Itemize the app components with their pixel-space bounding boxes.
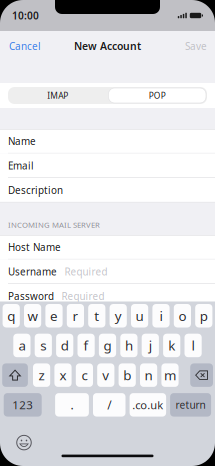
- staticText: h: [125, 337, 133, 354]
- staticText: /: [107, 397, 111, 413]
- button[interactable]: Email: [0, 153, 215, 178]
- staticText: .co.uk: [132, 397, 163, 412]
- button[interactable]: g: [99, 334, 116, 357]
- button[interactable]: v: [97, 363, 114, 387]
- button[interactable]: IMAP: [8, 87, 107, 104]
- staticText: INCOMING MAIL SERVER: [8, 220, 100, 230]
- button[interactable]: Username: [0, 259, 215, 284]
- button[interactable]: e: [45, 304, 63, 327]
- button[interactable]: a: [13, 334, 30, 357]
- button[interactable]: m: [161, 363, 179, 387]
- button[interactable]: u: [131, 304, 148, 327]
- staticText: j: [149, 337, 152, 354]
- staticText: v: [102, 366, 109, 384]
- button[interactable]: 123: [4, 393, 42, 417]
- button[interactable]: n: [140, 363, 157, 387]
- staticText: i: [159, 307, 162, 325]
- staticText: a: [18, 337, 25, 354]
- staticText: c: [81, 366, 87, 384]
- button[interactable]: y: [110, 304, 127, 327]
- button[interactable]: o: [174, 304, 191, 327]
- staticText: 10:00: [12, 9, 39, 22]
- staticText: x: [59, 366, 66, 384]
- button[interactable]: q: [3, 304, 20, 327]
- staticText: e: [50, 307, 58, 325]
- staticText: g: [103, 337, 111, 354]
- button[interactable]: Host Name: [0, 235, 215, 259]
- staticText: Save: [185, 39, 207, 53]
- button[interactable]: w: [24, 304, 41, 327]
- button[interactable]: /: [93, 393, 125, 417]
- staticText: k: [168, 337, 175, 354]
- staticText: d: [61, 337, 69, 354]
- button[interactable]: d: [56, 334, 73, 357]
- staticText: l: [192, 337, 195, 354]
- staticText: y: [115, 307, 122, 325]
- button[interactable]: .: [55, 393, 89, 417]
- staticText: p: [200, 307, 208, 325]
- staticText: Host Name: [8, 241, 61, 254]
- button[interactable]: POP: [107, 87, 207, 104]
- button[interactable]: l: [184, 334, 202, 357]
- staticText: return: [176, 398, 206, 412]
- staticText: IMAP: [47, 90, 68, 101]
- staticText: POP: [149, 90, 166, 101]
- button[interactable]: b: [119, 363, 136, 387]
- staticText: Required: [61, 290, 104, 303]
- button[interactable]: z: [33, 363, 50, 387]
- staticText: m: [164, 366, 176, 384]
- staticText: q: [7, 307, 15, 325]
- button[interactable]: j: [142, 334, 159, 357]
- staticText: n: [145, 366, 153, 384]
- button[interactable]: h: [120, 334, 137, 357]
- staticText: o: [178, 307, 186, 325]
- button[interactable]: t: [88, 304, 105, 327]
- button[interactable]: f: [77, 334, 95, 357]
- button[interactable]: Password: [0, 284, 215, 308]
- staticText: u: [136, 307, 144, 325]
- staticText: Name: [8, 135, 36, 148]
- button[interactable]: c: [76, 363, 93, 387]
- staticText: Description: [8, 184, 63, 197]
- button[interactable]: p: [195, 304, 212, 327]
- button[interactable]: i: [152, 304, 170, 327]
- button[interactable]: Save: [177, 31, 215, 61]
- staticText: .: [70, 397, 73, 413]
- staticText: Required: [64, 265, 107, 278]
- button[interactable]: s: [35, 334, 52, 357]
- staticText: 123: [12, 397, 33, 412]
- button[interactable]: Name: [0, 129, 215, 153]
- staticText: w: [28, 307, 38, 325]
- button[interactable]: k: [163, 334, 180, 357]
- button[interactable]: Cancel: [0, 31, 50, 61]
- button[interactable]: [0, 308, 215, 333]
- staticText: New Account: [74, 39, 141, 53]
- button[interactable]: x: [54, 363, 72, 387]
- button[interactable]: Emoji keyboard: [13, 432, 35, 454]
- staticText: Username: [8, 265, 57, 278]
- button[interactable]: Description: [0, 178, 215, 202]
- staticText: Cancel: [9, 39, 41, 53]
- button[interactable]: Delete: [190, 363, 213, 387]
- staticText: f: [84, 337, 89, 354]
- button[interactable]: return: [170, 393, 211, 417]
- staticText: b: [123, 366, 131, 384]
- staticText: t: [94, 307, 99, 325]
- staticText: r: [72, 307, 78, 325]
- button[interactable]: Shift: [2, 363, 28, 387]
- staticText: z: [39, 366, 45, 384]
- staticText: Password: [8, 290, 54, 303]
- button[interactable]: .co.uk: [130, 393, 166, 417]
- staticText: s: [40, 337, 46, 354]
- button[interactable]: r: [67, 304, 84, 327]
- staticText: Email: [8, 159, 34, 172]
